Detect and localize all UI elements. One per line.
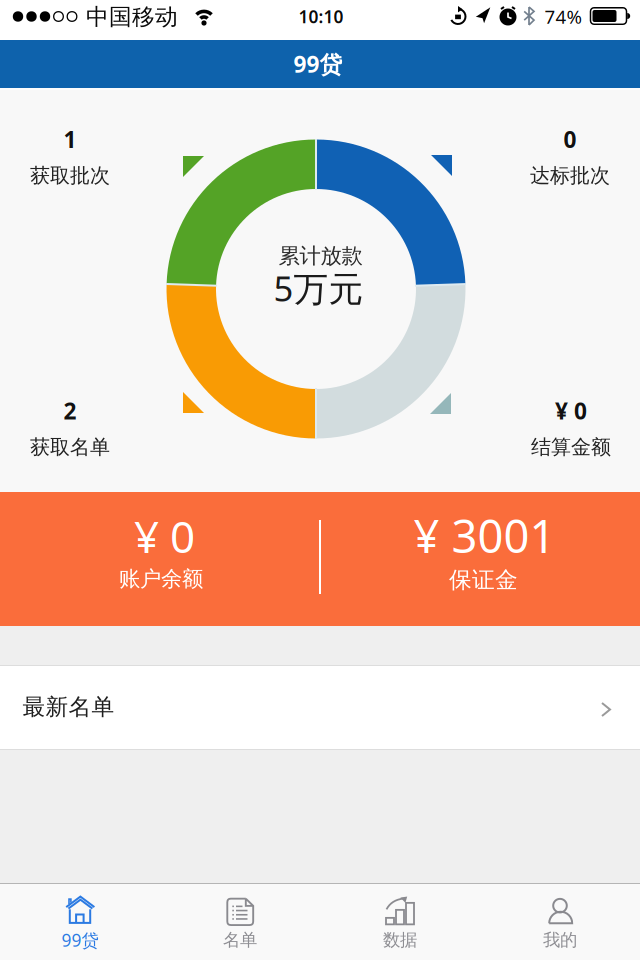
staticText: ¥ 0 [555,396,587,426]
staticText: 达标批次 [530,163,610,188]
staticText: 账户余额 [119,566,203,592]
staticText: 保证金 [449,566,518,594]
staticText: 最新名单 [22,693,114,721]
staticText: 74% [544,4,582,29]
staticText: 累计放款 [278,243,362,269]
staticText: 获取名单 [30,435,110,459]
staticText: ¥ 3001 [413,505,555,566]
staticText: 获取批次 [30,163,110,188]
staticText: 5万元 [273,265,363,311]
staticText: 99贷 [293,49,342,79]
staticText: 名单 [223,929,257,951]
staticText: 我的 [543,929,577,951]
staticText: 10:10 [298,5,343,28]
staticText: 结算金额 [531,435,611,459]
staticText: 2 [63,396,76,426]
button[interactable]: 99贷 [0,886,160,960]
button[interactable]: 最新名单 [0,665,640,750]
staticText: 1 [63,124,76,154]
staticText: 99贷 [61,928,98,951]
button[interactable]: 数据 [320,886,480,960]
button[interactable]: 名单 [160,886,320,960]
staticText: 0 [563,124,576,154]
button[interactable]: 我的 [480,886,640,960]
staticText: 数据 [383,929,417,951]
staticText: 中国移动 [86,3,178,31]
staticText: ¥ 0 [134,507,195,565]
